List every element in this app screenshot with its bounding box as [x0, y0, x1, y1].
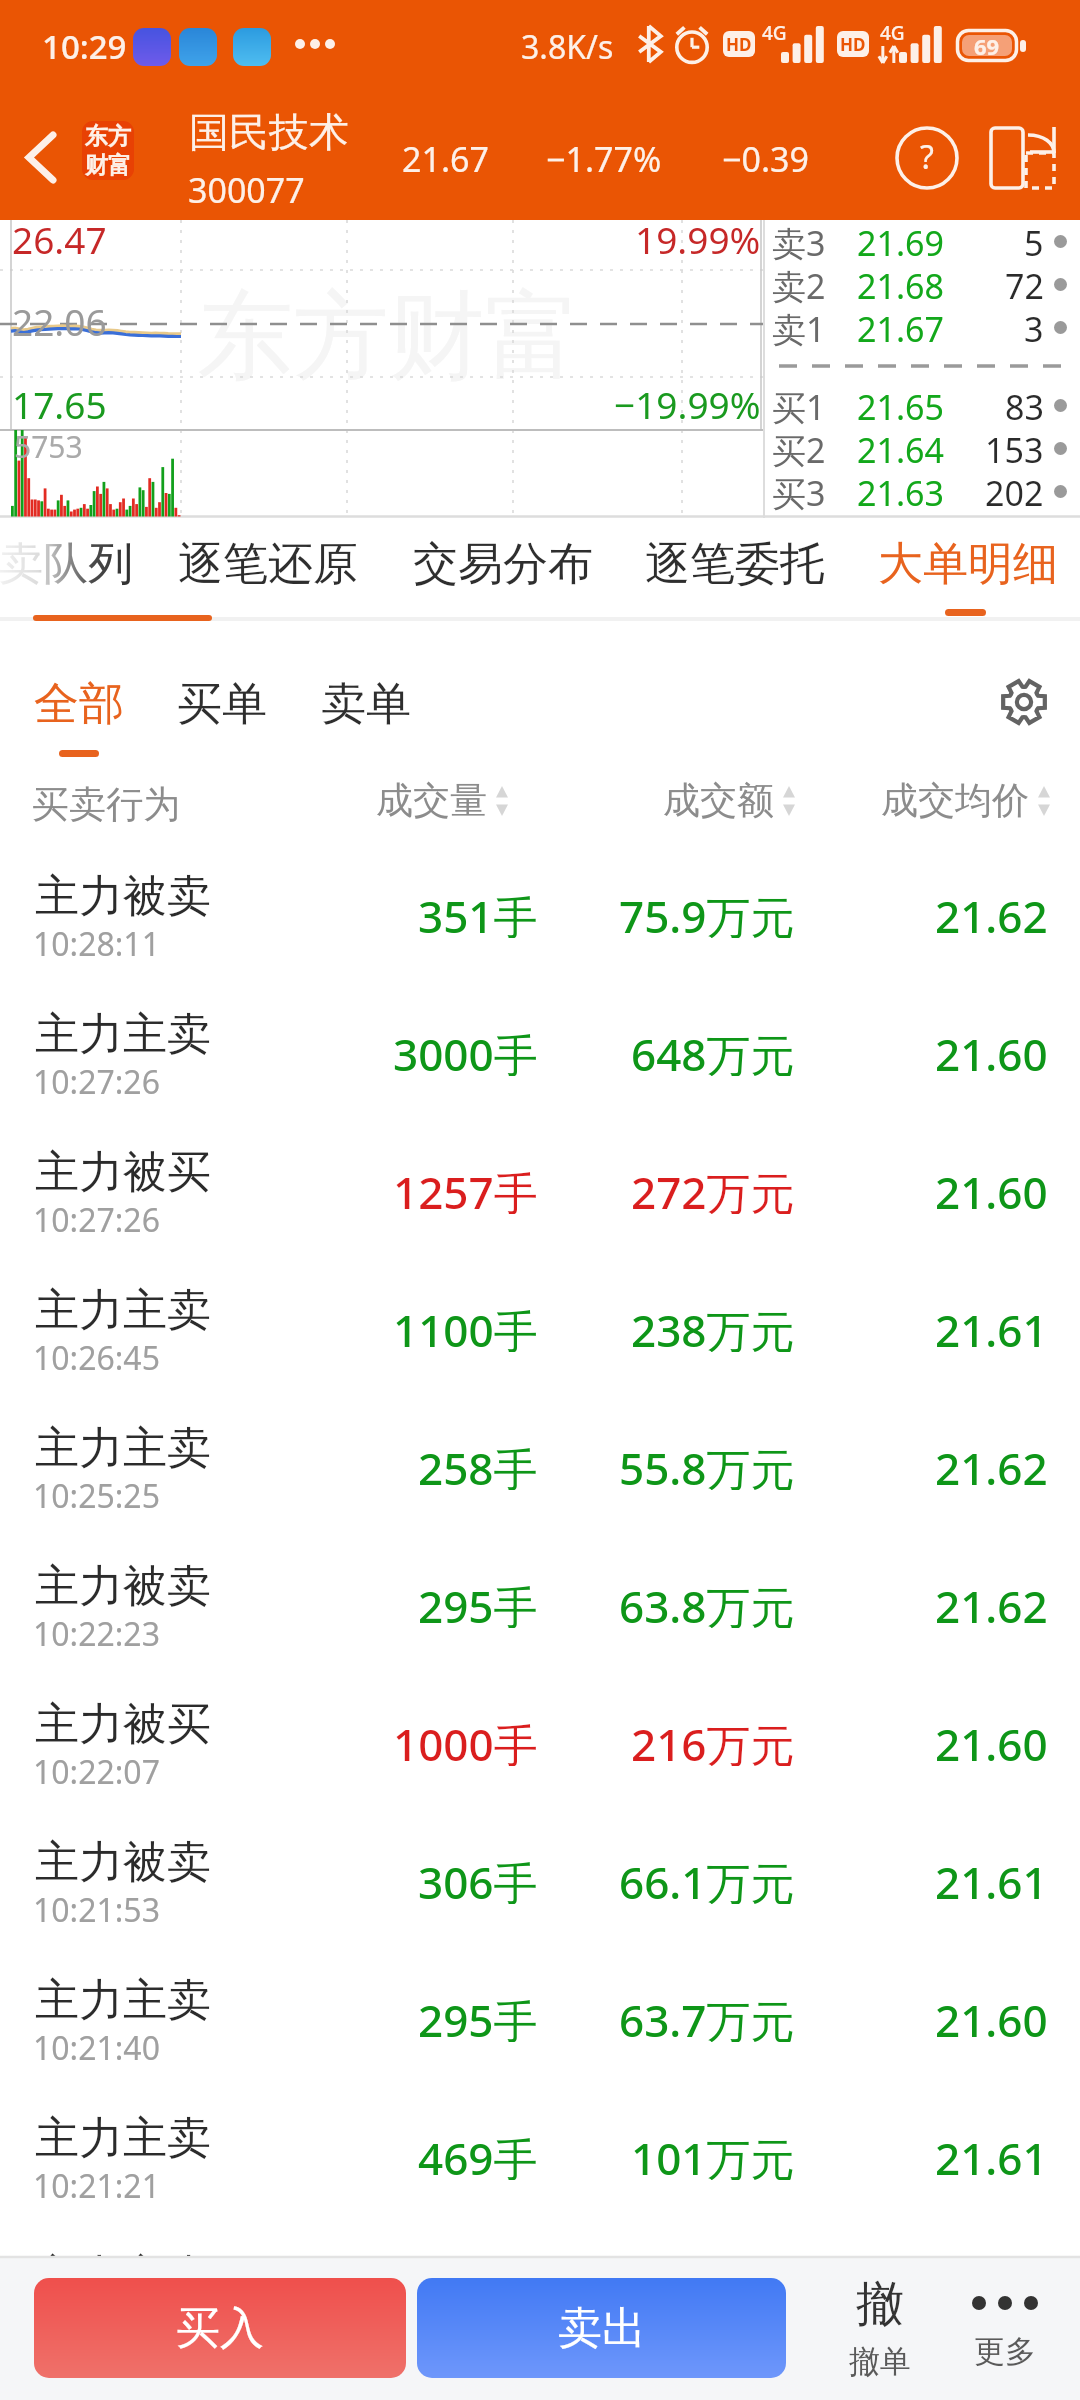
staticText: 21.64 [857, 427, 944, 470]
staticText: 主力主卖 [35, 1007, 211, 1062]
staticText: 5753 [14, 426, 83, 467]
button[interactable]: Help [877, 105, 977, 220]
staticText: 10:25:25 [33, 1474, 160, 1518]
button[interactable]: 卖1 [763, 306, 1080, 349]
staticText: 21.62 [935, 886, 1048, 938]
button[interactable]: 主力主卖 [0, 2225, 1080, 2363]
staticText: 1100手 [393, 1300, 538, 1352]
button[interactable]: 撤 [820, 2274, 940, 2381]
button[interactable]: 卖出 [417, 2278, 786, 2378]
button[interactable]: 主力主卖 [0, 1259, 1080, 1397]
staticText: 306手 [418, 1852, 538, 1904]
staticText: 10:21:10 [33, 2302, 160, 2346]
staticText: 21.60 [935, 1990, 1048, 2042]
staticText: 202 [985, 470, 1044, 513]
staticText: 295手 [418, 1576, 538, 1628]
staticText: 22.06 [12, 296, 107, 346]
button[interactable]: 主力被买 [0, 1673, 1080, 1811]
staticText: 10:27:26 [33, 1198, 160, 1242]
staticText: 63.7万元 [619, 1990, 795, 2042]
button[interactable]: 买1 [763, 384, 1080, 427]
staticText: HD [726, 33, 752, 56]
staticText: 26.47 [12, 214, 107, 264]
button[interactable]: 大单明细 [878, 536, 1058, 593]
staticText: 3.8K/s [521, 25, 614, 69]
staticText: 买单 [177, 676, 267, 733]
staticText: 主力主卖 [35, 1973, 211, 2028]
staticText: 主力被买 [35, 1145, 211, 1200]
staticText: 卖出 [558, 2301, 646, 2356]
staticText: −0.39 [722, 136, 809, 182]
button[interactable]: 逐笔还原 [178, 536, 358, 593]
staticText: 卖2 [772, 263, 826, 306]
staticText: HD [840, 33, 866, 56]
button[interactable]: 主力被卖 [0, 1811, 1080, 1949]
button[interactable]: Settings [986, 664, 1062, 740]
button[interactable]: 买入 [34, 2278, 406, 2378]
staticText: 卖3 [772, 220, 826, 263]
button[interactable]: 逐笔委托 [645, 536, 825, 593]
button[interactable]: 主力主卖 [0, 1397, 1080, 1535]
button[interactable]: 全部 [34, 676, 124, 733]
button[interactable]: 卖2 [763, 263, 1080, 306]
button[interactable]: 交易分布 [413, 536, 593, 593]
staticText: 300077 [188, 167, 305, 213]
button[interactable]: 主力主卖 [0, 983, 1080, 1121]
staticText: 成交额 [663, 777, 774, 824]
staticText: 66.1万元 [619, 1852, 795, 1904]
staticText: 10:21:53 [33, 1888, 160, 1932]
staticText: 351手 [418, 886, 538, 938]
staticText: 469手 [418, 2128, 538, 2180]
staticText: 主力主卖 [35, 2111, 211, 2166]
staticText: 成交均价 [881, 777, 1029, 824]
staticText: 10:21:40 [33, 2026, 160, 2070]
staticText: 财富 [85, 151, 131, 180]
staticText: 主力主卖 [35, 2249, 211, 2304]
button[interactable]: Back [0, 105, 82, 220]
staticText: 卖队列 [0, 536, 133, 593]
button[interactable]: 成交量 [376, 777, 508, 824]
staticText: 主力被卖 [35, 869, 211, 924]
button[interactable]: 卖队列 [0, 536, 133, 593]
staticText: 主力被卖 [35, 1559, 211, 1614]
staticText: 1257手 [393, 1162, 538, 1214]
button[interactable]: Fullscreen [978, 105, 1080, 220]
staticText: 买3 [772, 470, 826, 513]
staticText: 10:22:07 [33, 1750, 160, 1794]
staticText: 21.61 [935, 2266, 1048, 2318]
staticText: 72 [1005, 263, 1044, 306]
button[interactable]: 主力被卖 [0, 845, 1080, 983]
button[interactable]: 买2 [763, 427, 1080, 470]
button[interactable]: 成交额 [663, 777, 795, 824]
staticText: 4G [762, 20, 787, 46]
staticText: 101万元 [631, 2128, 795, 2180]
staticText: 主力主卖 [35, 1421, 211, 1476]
button[interactable]: More [945, 2274, 1065, 2371]
staticText: 主力被卖 [35, 1835, 211, 1890]
staticText: 648万元 [631, 1024, 795, 1076]
staticText: 10:27:26 [33, 1060, 160, 1104]
button[interactable]: 成交均价 [881, 777, 1050, 824]
staticText: 21.61 [935, 2128, 1048, 2180]
button[interactable]: 卖3 [763, 220, 1080, 263]
staticText: 大单明细 [878, 536, 1058, 593]
staticText: 153 [985, 427, 1044, 470]
staticText: 258手 [418, 1438, 538, 1490]
button[interactable]: 卖单 [321, 676, 411, 733]
staticText: 东方财富 [197, 277, 581, 398]
button[interactable]: 主力主卖 [0, 2087, 1080, 2225]
button[interactable]: 主力被卖 [0, 1535, 1080, 1673]
button[interactable]: 主力被买 [0, 1121, 1080, 1259]
staticText: 10:26:45 [33, 1336, 160, 1380]
staticText: 238万元 [631, 1300, 795, 1352]
button[interactable]: 主力主卖 [0, 1949, 1080, 2087]
button[interactable]: 买单 [177, 676, 267, 733]
button[interactable]: 东方 [82, 121, 134, 180]
staticText: 21.60 [935, 1714, 1048, 1766]
button[interactable]: 买3 [763, 470, 1080, 513]
staticText: 19.99% [635, 214, 761, 264]
staticText: 21.63 [857, 470, 944, 513]
staticText: 21.67 [857, 306, 944, 349]
staticText: 55.8万元 [619, 1438, 795, 1490]
staticText: 5 [1024, 220, 1044, 263]
